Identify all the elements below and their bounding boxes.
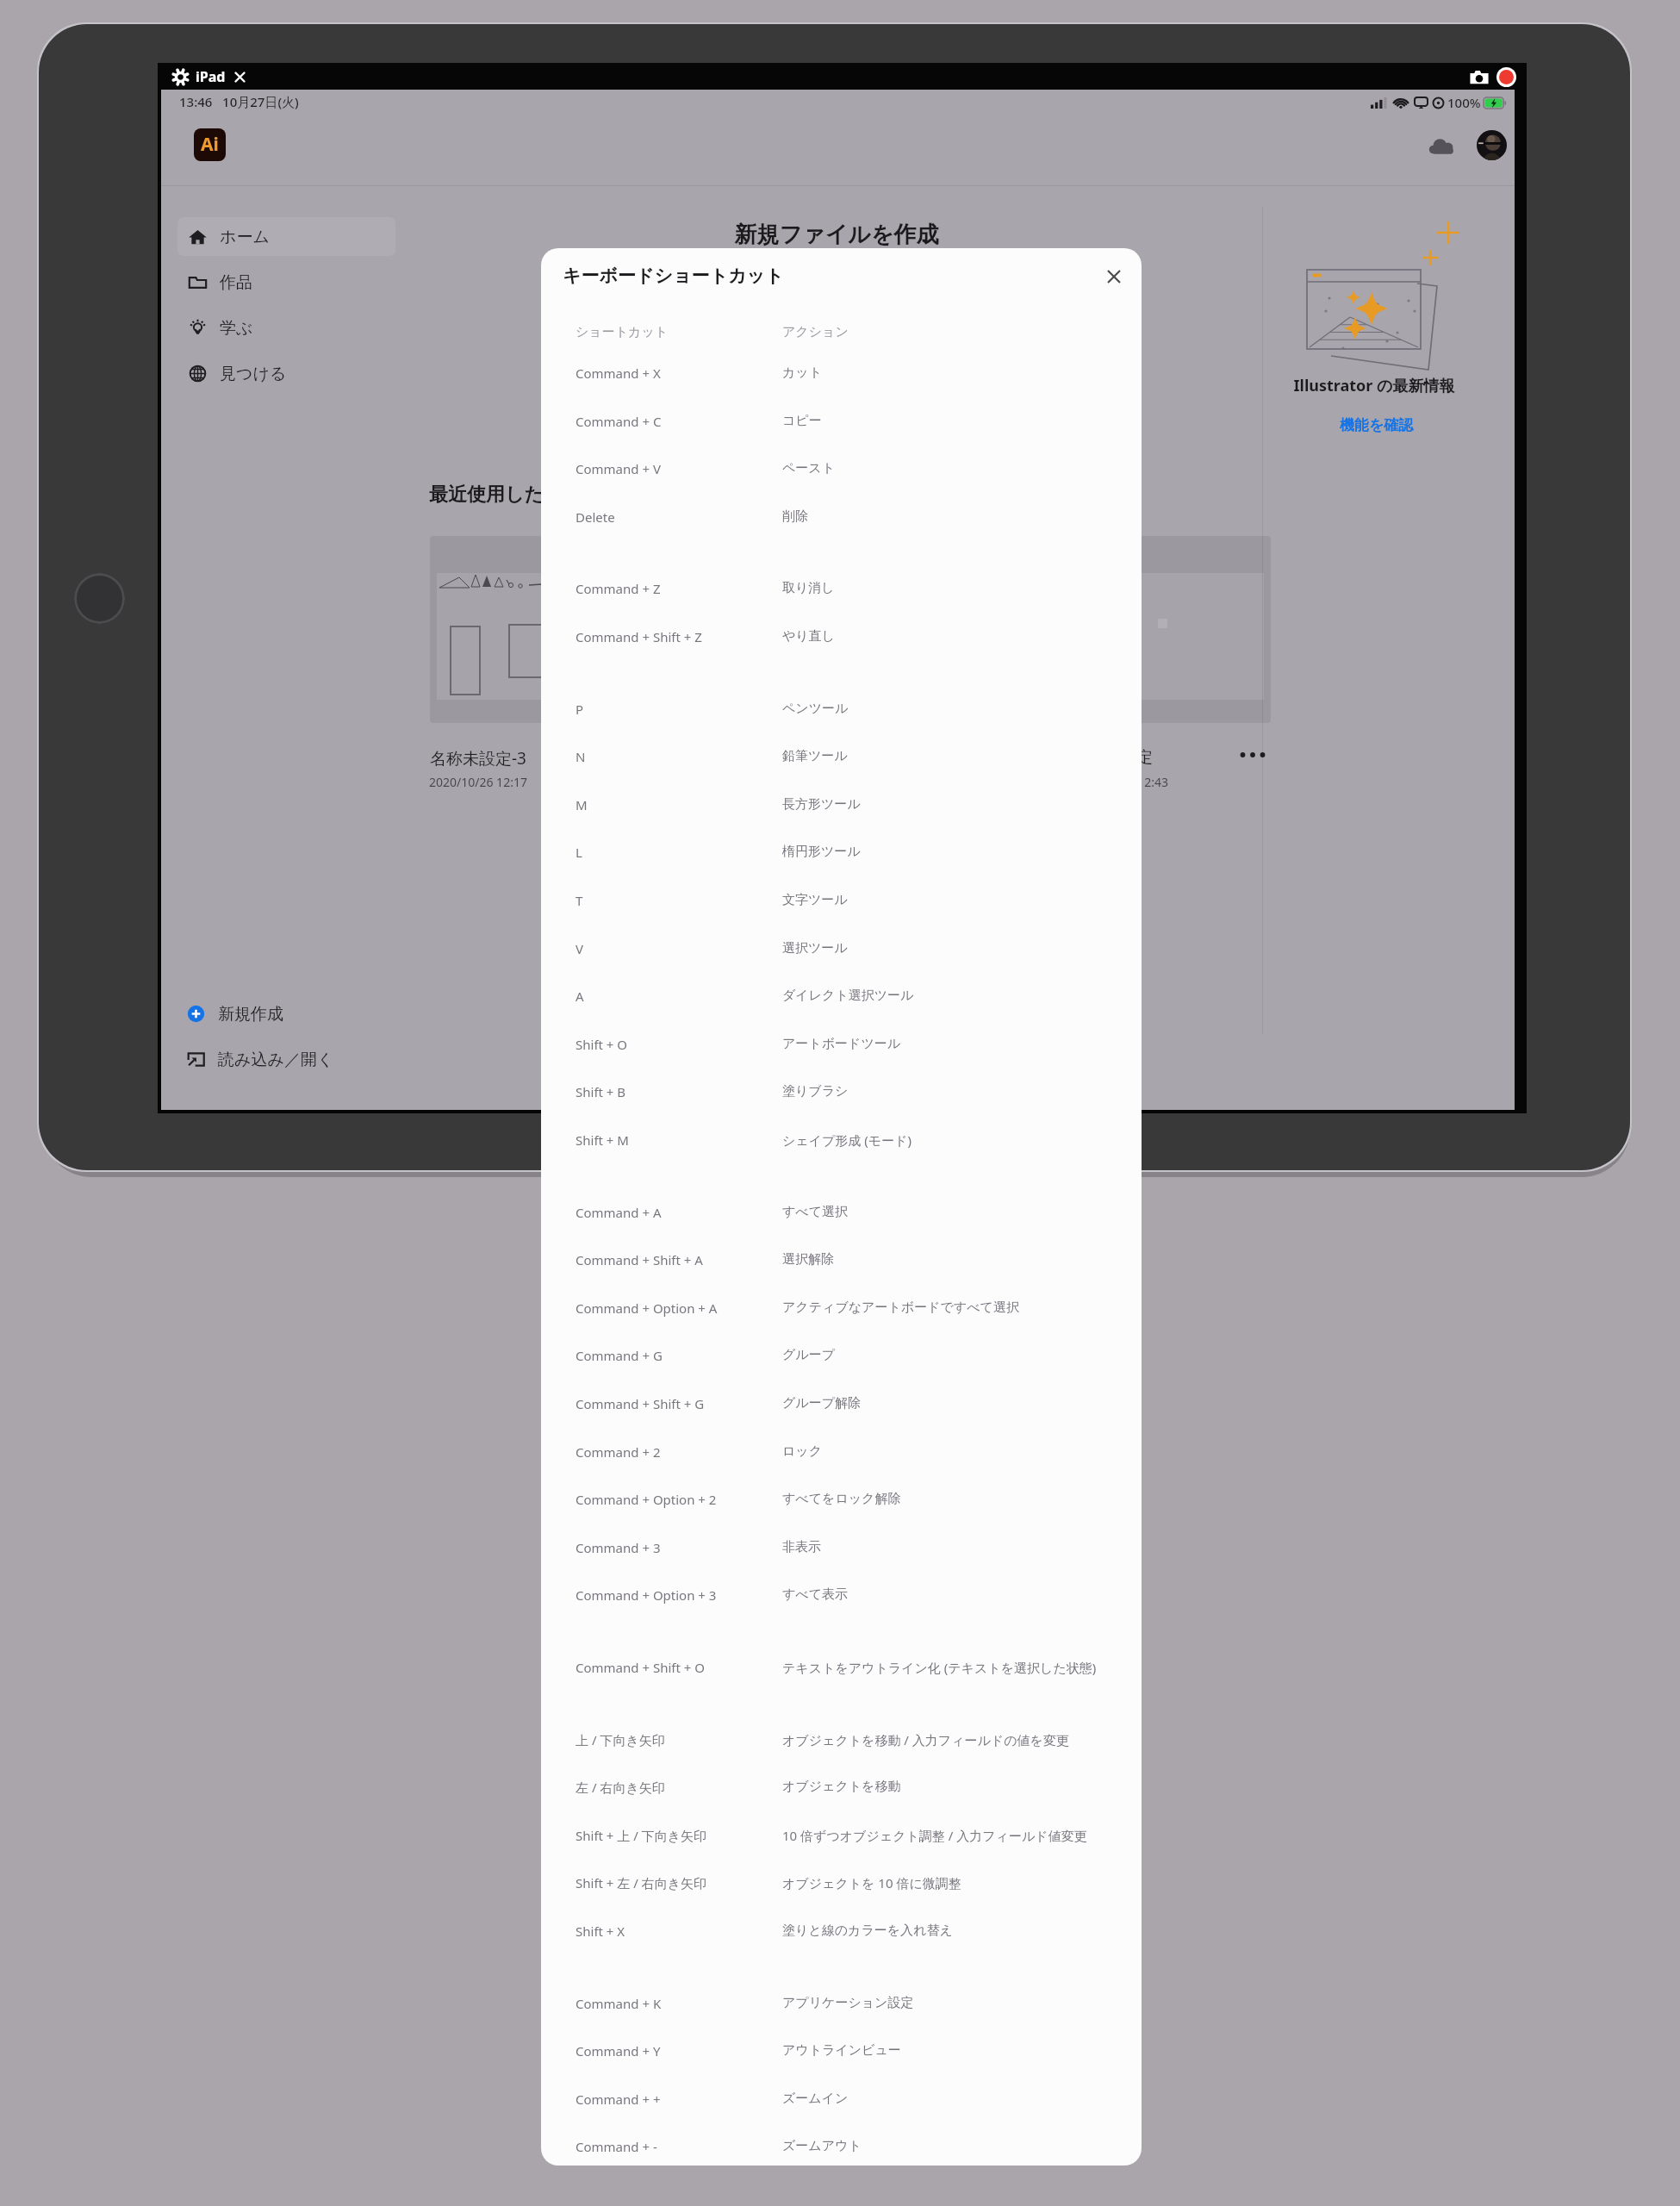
staticText: 左 / 右向き矢印 (576, 1779, 665, 1796)
button[interactable]: ホーム (177, 217, 395, 256)
staticText: ペンツール (782, 701, 849, 717)
staticText: 長方形ツール (782, 796, 861, 813)
button[interactable] (430, 536, 630, 723)
staticText: Command + Option + A (576, 1299, 718, 1317)
staticText: 13:46 10月27日(火) (179, 93, 299, 110)
staticText: Command + + (576, 2091, 661, 2108)
button[interactable] (644, 536, 843, 723)
button[interactable]: 機能を確認 (1204, 411, 1549, 439)
staticText: オブジェクトを移動 / 入力フィールドの値を変更 (782, 1731, 1069, 1748)
staticText: 2020/10/26 12:17 (429, 774, 527, 790)
staticText: 鉛筆ツール (782, 748, 848, 764)
button[interactable]: Screenshot (1467, 66, 1491, 87)
staticText: Shift + M (576, 1131, 629, 1149)
button[interactable]: 作品 (177, 263, 395, 302)
staticText: ペースト (782, 460, 836, 477)
staticText: 機能を確認 (1340, 416, 1414, 434)
staticText: 選択ツール (782, 940, 848, 957)
staticText: Shift + O (576, 1036, 628, 1053)
staticText: V (576, 940, 584, 957)
button[interactable]: Settings (170, 66, 190, 87)
staticText: 2020/10/26 12:43 (1070, 774, 1168, 790)
button[interactable]: 学ぶ (177, 308, 395, 347)
staticText: Command + Z (576, 580, 661, 597)
staticText: アウトラインビュー (782, 2042, 901, 2059)
staticText: 新規ファイルを作成 (678, 221, 995, 249)
staticText: 100% (1447, 94, 1481, 111)
staticText: Command + Shift + G (576, 1395, 705, 1412)
staticText: Command + Y (576, 2042, 661, 2060)
button[interactable] (1071, 536, 1271, 723)
staticText: Command + Option + 2 (576, 1491, 717, 1508)
staticText: アクティブなアートボードですべて選択 (782, 1299, 1019, 1316)
staticText: Command + 2 (576, 1443, 661, 1461)
staticText: 楕円形ツール (782, 844, 861, 860)
button[interactable]: Close (1093, 256, 1135, 297)
button[interactable]: 新規作成 (173, 991, 432, 1037)
staticText: ズームイン (782, 2091, 849, 2107)
staticText: 名称未設定-3 (430, 747, 526, 770)
staticText: ダイレクト選択ツール (782, 988, 914, 1004)
staticText: ショートカット (576, 324, 669, 340)
staticText: 選択解除 (782, 1251, 834, 1268)
staticText: Command + K (576, 1995, 662, 2012)
staticText: Command + Shift + Z (576, 628, 702, 645)
staticText: シェイプ形成 (モード) (782, 1131, 912, 1149)
staticText: 削除 (782, 508, 808, 525)
staticText: コピー (782, 413, 822, 429)
button[interactable]: Profile (1477, 130, 1507, 160)
button[interactable]: Illustrator (194, 128, 226, 161)
staticText: 学ぶ (220, 318, 253, 339)
staticText: Command + G (576, 1347, 663, 1364)
staticText: オブジェクトを 10 倍に微調整 (782, 1874, 961, 1891)
staticText: iPad (196, 67, 226, 86)
staticText: Shift + 上 / 下向き矢印 (576, 1827, 707, 1844)
staticText: キーボードショートカット (563, 265, 784, 287)
staticText: グループ解除 (782, 1395, 862, 1411)
staticText: Shift + 左 / 右向き矢印 (576, 1874, 707, 1891)
staticText: Command + Shift + O (576, 1659, 705, 1676)
staticText: T (576, 892, 583, 909)
staticText: テキストをアウトライン化 (テキストを選択した状態) (782, 1659, 1097, 1676)
staticText: Ai (201, 132, 219, 157)
staticText: N (576, 748, 586, 765)
staticText: 非表示 (782, 1539, 821, 1555)
staticText: 作品 (220, 272, 252, 293)
staticText: 見つける (220, 364, 287, 384)
staticText: Command + Option + 3 (576, 1586, 717, 1604)
button[interactable]: 見つける (177, 354, 395, 393)
staticText: 読み込み／開く (218, 1050, 334, 1070)
staticText: Delete (576, 508, 615, 526)
staticText: P (576, 701, 584, 718)
staticText: 最近使用したファイル (429, 483, 622, 507)
staticText: アクション (782, 324, 849, 340)
staticText: すべて表示 (782, 1586, 849, 1603)
staticText: Command + A (576, 1204, 662, 1221)
staticText: オブジェクトを移動 (782, 1779, 901, 1795)
button[interactable]: Record (1495, 65, 1517, 88)
staticText: すべてをロック解除 (782, 1491, 901, 1507)
button[interactable]: Close mirroring (231, 68, 248, 85)
staticText: Shift + X (576, 1922, 625, 1940)
staticText: アプリケーション設定 (782, 1995, 914, 2011)
staticText: 塗りと線のカラーを入れ替え (782, 1922, 953, 1939)
staticText: Command + C (576, 413, 662, 430)
staticText: 上 / 下向き矢印 (576, 1731, 665, 1748)
staticText: M (576, 796, 588, 813)
staticText: ロック (782, 1443, 823, 1460)
button[interactable]: Cloud (1422, 128, 1463, 165)
staticText: すべて選択 (782, 1204, 849, 1220)
staticText: 取り消し (782, 580, 835, 596)
staticText: カット (782, 365, 823, 381)
button[interactable]: More options (1237, 739, 1268, 770)
staticText: 10 倍ずつオブジェクト調整 / 入力フィールド値変更 (782, 1827, 1087, 1844)
staticText: アートボードツール (782, 1036, 901, 1052)
staticText: 塗りブラシ (782, 1083, 849, 1100)
staticText: Illustrator の最新情報 (1202, 375, 1546, 396)
button[interactable]: 読み込み／開く (173, 1037, 432, 1082)
staticText: 文字ツール (782, 892, 848, 908)
staticText: 新規作成 (218, 1004, 283, 1025)
staticText: 名称未設定 (1071, 747, 1153, 768)
staticText: やり直し (782, 628, 836, 645)
